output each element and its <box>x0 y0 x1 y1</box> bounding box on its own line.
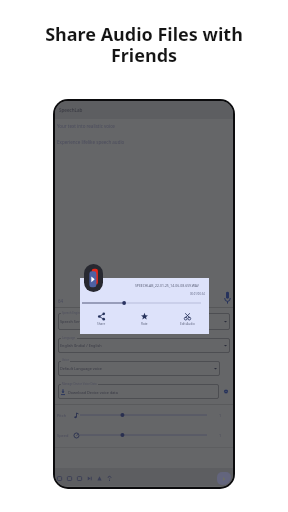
staticText: Your text into realistic voice <box>57 123 115 129</box>
staticText: Share Audio Files with Friends <box>44 22 244 68</box>
staticText: 1 <box>219 413 222 418</box>
staticText: Share <box>97 322 106 326</box>
staticText: Pitch <box>57 413 67 418</box>
button[interactable]: Play <box>84 264 103 292</box>
staticText: SpeechLab <box>59 107 83 113</box>
button[interactable]: Default Language voice <box>58 361 220 376</box>
staticText: Edit Audio <box>180 322 195 326</box>
button[interactable]: English (India) / English <box>58 338 230 353</box>
staticText: 00:01/00:34 <box>190 292 205 296</box>
button[interactable]: Assistant <box>217 472 231 485</box>
staticText: Rate <box>141 322 148 326</box>
staticText: Speech Engine <box>62 311 82 315</box>
button[interactable]: Microphone <box>224 291 231 304</box>
staticText: Speech Services by Go <box>60 319 100 324</box>
button[interactable]: Settings <box>224 389 228 394</box>
staticText: 1 <box>219 433 222 438</box>
staticText: Voice <box>62 358 69 362</box>
staticText: Download Device voice data <box>68 390 118 395</box>
staticText: 64 <box>58 298 64 304</box>
button[interactable]: Rate <box>123 309 166 330</box>
button[interactable]: Speech Services by Go <box>58 313 230 330</box>
staticText: Default Language voice <box>60 366 102 371</box>
staticText: SPEECHLAB_22-01-25_14-06-08-659.WAV <box>135 283 199 288</box>
staticText: English (India) / English <box>60 343 102 348</box>
button[interactable]: Share <box>80 309 123 330</box>
staticText: Language <box>62 336 76 340</box>
button[interactable]: Download Device voice data <box>58 384 219 399</box>
button[interactable]: Edit Audio <box>166 309 209 330</box>
staticText: Experience lifelike speech audio <box>57 139 125 145</box>
staticText: Speed <box>57 433 69 438</box>
staticText: Manage Device Voice Data <box>62 382 97 386</box>
